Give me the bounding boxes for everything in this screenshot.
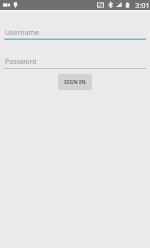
other: Location [13, 2, 18, 8]
other: Bluetooth [108, 2, 113, 8]
other: Mobile signal off [116, 2, 122, 8]
staticText: Password [5, 57, 37, 67]
other: Battery [125, 2, 130, 8]
staticText: SIGN IN [64, 78, 86, 85]
button[interactable]: Password [4, 57, 146, 69]
other: No SIM card [97, 2, 104, 8]
staticText: Username [5, 28, 40, 38]
other: Screen recording [3, 2, 10, 8]
button[interactable]: SIGN IN [58, 74, 92, 89]
button[interactable]: Username [4, 28, 146, 40]
staticText: 3:01 [135, 0, 150, 10]
